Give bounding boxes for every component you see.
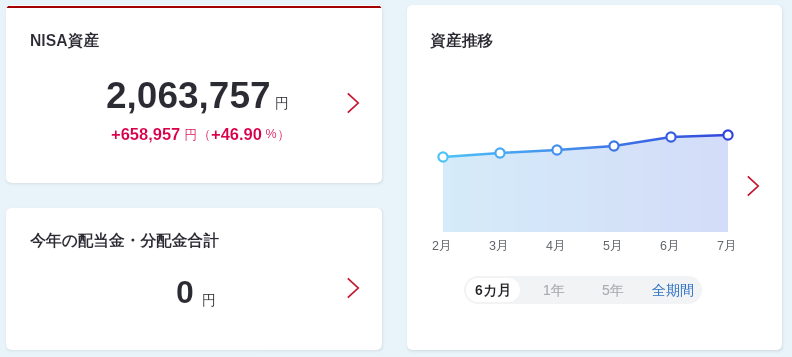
staticText: +658,957 [111,125,181,143]
button[interactable]: 資産推移 [407,5,782,350]
staticText: 5月 [603,238,623,254]
staticText: 今年の配当金・分配金合計 [30,231,219,251]
staticText: 2月 [432,238,452,254]
staticText: 2,063,757 [106,75,271,116]
staticText: 1年 [543,282,565,300]
button[interactable]: NISA資産 [6,5,382,183]
staticText: % [262,127,277,141]
button[interactable]: 5年 [586,276,640,304]
staticText: 円 [181,126,198,142]
staticText: 円 [275,95,289,113]
staticText: （ [198,126,211,142]
staticText: +46.90 [211,125,262,143]
staticText: 4月 [546,238,566,254]
staticText: 5年 [602,282,624,300]
staticText: ） [277,126,290,142]
button[interactable]: 詳細を見る [741,169,765,203]
button[interactable]: 6カ月 [466,278,520,302]
button[interactable]: 詳細を見る [341,271,365,305]
staticText: 6月 [660,238,680,254]
staticText: 0 [176,274,194,310]
staticText: 6カ月 [475,282,512,300]
button[interactable]: 今年の配当金・分配金合計 [6,208,382,350]
staticText: NISA資産 [30,31,99,51]
staticText: 資産推移 [430,31,493,51]
staticText: 全期間 [652,282,694,300]
staticText: 3月 [489,238,509,254]
staticText: 7月 [717,238,737,254]
button[interactable]: 1年 [527,276,581,304]
staticText: 円 [202,292,216,310]
button[interactable]: 詳細を見る [341,86,365,120]
button[interactable]: 全期間 [643,276,702,304]
